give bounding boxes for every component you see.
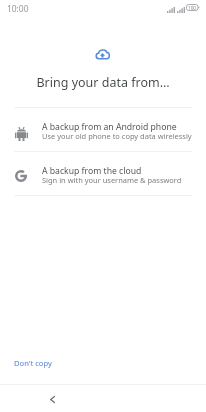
staticText: A backup from an Android phone [42,121,177,133]
button[interactable]: A backup from an Android phone [0,108,206,151]
staticText: Don't copy [14,358,52,368]
button[interactable]: Back [0,385,103,412]
staticText: Bring your data from… [0,74,206,91]
staticText: Use your old phone to copy data wireless… [42,131,192,141]
staticText: A backup from the cloud [42,165,142,177]
staticText: 10:00 [7,3,29,14]
staticText: 100 [188,5,197,11]
staticText: Sign in with your username & password [42,175,182,185]
button[interactable]: A backup from the cloud [0,152,206,195]
button[interactable]: Don't copy [8,354,58,372]
